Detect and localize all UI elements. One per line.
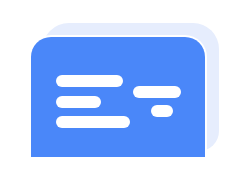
button[interactable]: Message card (31, 37, 205, 157)
button[interactable]: Previous message card (42, 23, 219, 151)
